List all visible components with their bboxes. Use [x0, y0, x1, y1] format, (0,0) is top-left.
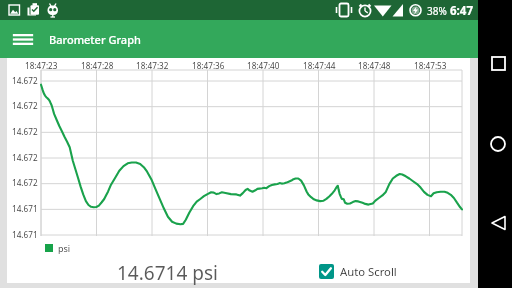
staticText: 14.671	[12, 229, 38, 240]
button[interactable]: Recent apps	[484, 49, 512, 77]
button[interactable]: Open navigation menu	[7, 24, 38, 55]
button[interactable]: Back	[484, 209, 512, 237]
staticText: 18:47:28	[81, 60, 114, 71]
staticText: 18:47:36	[192, 60, 225, 71]
staticText: 14.672	[12, 177, 38, 188]
staticText: 14.671	[12, 203, 38, 214]
staticText: Auto Scroll	[340, 264, 397, 279]
staticText: 18:47:53	[414, 60, 447, 71]
staticText: 14.672	[12, 152, 38, 163]
staticText: 18:47:32	[136, 60, 169, 71]
button[interactable]: Home	[484, 130, 512, 158]
staticText: 14.672	[12, 100, 38, 111]
staticText: 18:47:40	[247, 60, 280, 71]
staticText: 6:47	[450, 3, 473, 19]
staticText: 14.672	[12, 126, 38, 137]
staticText: 38%	[427, 4, 447, 18]
button[interactable]: Auto Scroll	[319, 264, 397, 279]
staticText: 18:47:44	[303, 60, 336, 71]
staticText: 14.672	[12, 75, 38, 86]
staticText: psi	[58, 242, 71, 254]
staticText: 14.6714 psi	[117, 260, 218, 286]
staticText: 18:47:48	[358, 60, 391, 71]
staticText: Barometer Graph	[49, 32, 141, 47]
staticText: 18:47:23	[25, 60, 58, 71]
